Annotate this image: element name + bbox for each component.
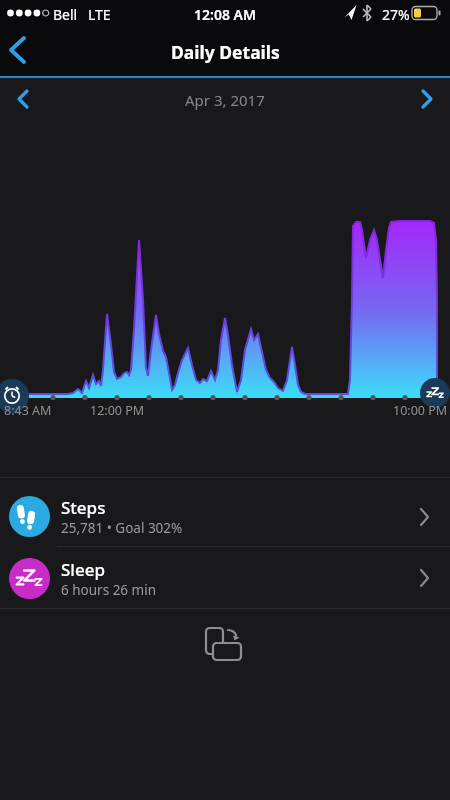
staticText: 27% [382,5,410,24]
staticText: Sleep [61,558,105,581]
staticText: 25,781 • Goal 302% [61,519,183,537]
button[interactable]: Steps [0,478,450,546]
button[interactable]: Sleep [0,547,450,608]
staticText: Steps [61,496,106,519]
staticText: Apr 3, 2017 [185,90,265,110]
staticText: 6 hours 26 min [61,581,157,599]
button[interactable] [202,625,248,665]
button[interactable] [412,85,442,113]
staticText: Daily Details [171,40,280,64]
button[interactable] [2,32,36,72]
staticText: 12:08 AM [194,5,256,24]
staticText: 8:43 AM [4,402,52,419]
staticText: Bell [53,5,78,24]
staticText: 10:00 PM [393,402,448,419]
staticText: LTE [88,5,111,24]
staticText: 12:00 PM [90,402,145,419]
button[interactable] [8,85,38,113]
